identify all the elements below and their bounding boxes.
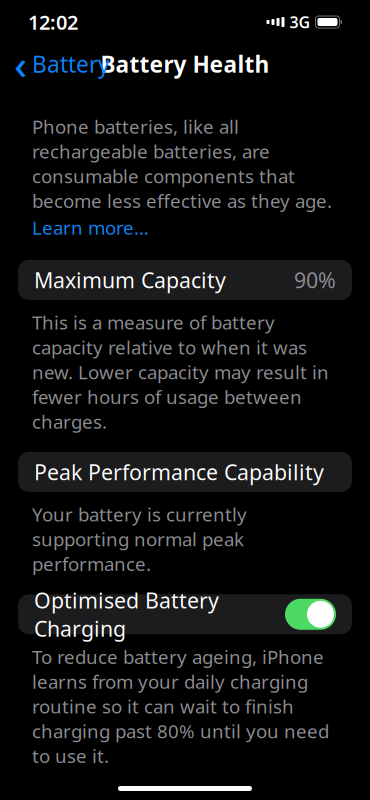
staticText: Battery Health: [100, 49, 269, 79]
staticText: Battery: [32, 49, 110, 79]
button[interactable]: ‹: [4, 33, 120, 94]
button[interactable]: Maximum Capacity: [18, 260, 352, 300]
staticText: Optimised Battery Charging: [34, 586, 219, 643]
button[interactable]: Optimised Battery Charging: [18, 594, 352, 634]
staticText: Phone batteries, like all rechargeable b…: [32, 114, 332, 213]
staticText: 90%: [294, 266, 336, 294]
staticText: Maximum Capacity: [34, 266, 226, 294]
staticText: Peak Performance Capability: [34, 458, 324, 486]
staticText: 12:02: [28, 9, 78, 35]
button[interactable]: Peak Performance Capability: [18, 452, 352, 492]
staticText: Learn more…: [32, 215, 149, 240]
button[interactable]: Learn more…: [32, 215, 149, 240]
staticText: To reduce battery ageing, iPhone learns …: [32, 644, 329, 768]
staticText: This is a measure of battery capacity re…: [32, 310, 329, 434]
button[interactable]: Optimised Battery Charging: [285, 599, 336, 630]
staticText: ‹: [14, 37, 27, 90]
staticText: 3G: [289, 11, 310, 33]
staticText: Your battery is currently supporting nor…: [32, 502, 247, 576]
